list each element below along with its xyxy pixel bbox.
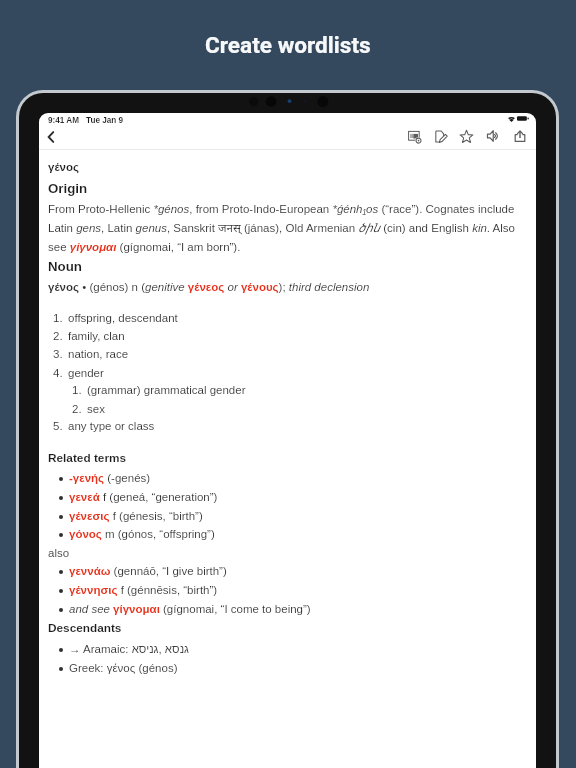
button[interactable]: Back <box>40 126 62 148</box>
staticText: γένος <box>48 161 79 174</box>
staticText: offspring, descendant <box>68 312 178 325</box>
staticText: Create wordlists <box>205 32 371 58</box>
staticText: γένος • (génos) n (genitive γένεος or γέ… <box>48 281 520 294</box>
button[interactable]: Favorite <box>455 125 477 147</box>
staticText: gender <box>68 367 104 380</box>
staticText: Tue Jan 9 <box>86 116 124 125</box>
staticText: → Aramaic: ⁦‫גניסא‬⁩, ⁦‫גנסא‬⁩ <box>69 643 524 656</box>
staticText: family, clan <box>68 330 125 343</box>
staticText: nation, race <box>68 348 129 361</box>
staticText: 1. <box>53 312 68 325</box>
button[interactable]: Share <box>509 125 531 147</box>
staticText: any type or class <box>68 420 155 433</box>
staticText: sex <box>87 403 105 416</box>
staticText: also <box>48 547 70 560</box>
staticText: 1. <box>72 384 87 397</box>
staticText: Related terms <box>48 451 127 464</box>
staticText: Origin <box>48 181 88 196</box>
staticText: Noun <box>48 259 82 274</box>
staticText: γεννάω (gennáō, “I give birth”) <box>69 565 524 578</box>
staticText: γόνος m (gónos, “offspring”) <box>69 528 524 541</box>
staticText: Greek: γένος (génos) <box>69 662 524 675</box>
staticText: 9:41 AM <box>48 116 80 125</box>
staticText: 4. <box>53 367 68 380</box>
staticText: 2. <box>72 403 87 416</box>
staticText: (grammar) grammatical gender <box>87 384 246 397</box>
button[interactable]: Notes <box>403 125 425 147</box>
staticText: From Proto-Hellenic *génos, from Proto-I… <box>48 203 520 254</box>
button[interactable]: Edit <box>429 125 451 147</box>
staticText: 2. <box>53 330 68 343</box>
staticText: Descendants <box>48 621 122 634</box>
staticText: 5. <box>53 420 68 433</box>
staticText: γενεά f (geneá, “generation”) <box>69 491 524 504</box>
staticText: -γενής (-genés) <box>69 472 524 485</box>
staticText: 3. <box>53 348 68 361</box>
staticText: γένεσις f (génesis, “birth”) <box>69 510 524 523</box>
staticText: γέννησις f (génnēsis, “birth”) <box>69 584 524 597</box>
button[interactable]: Pronounce <box>482 125 504 147</box>
staticText: and see γίγνομαι (gígnomai, “I come to b… <box>69 603 524 616</box>
